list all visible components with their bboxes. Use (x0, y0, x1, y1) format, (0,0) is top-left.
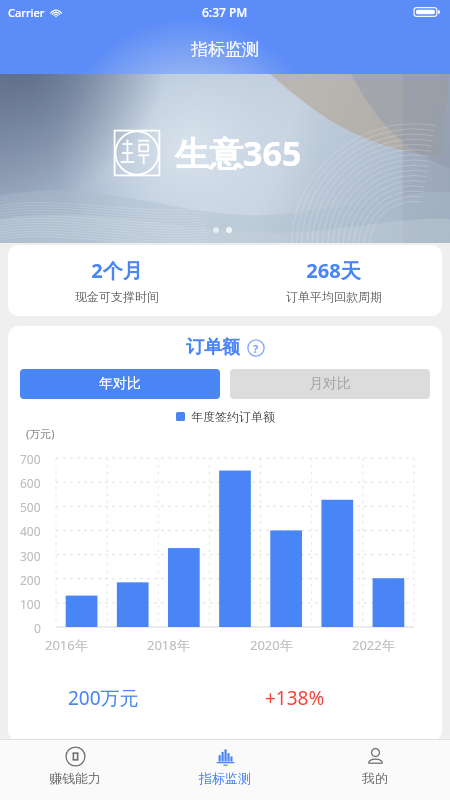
staticText: ? (253, 341, 259, 356)
staticText: 2020年 (250, 636, 293, 654)
staticText: 订单平均回款周期 (286, 289, 382, 304)
staticText: 指标监测 (199, 770, 251, 786)
staticText: 200万元 (68, 685, 225, 711)
staticText: 6:37 PM (202, 4, 248, 20)
staticText: 生意365 (175, 130, 302, 176)
staticText: 2018年 (147, 636, 190, 654)
staticText: (万元) (26, 426, 55, 441)
staticText: 订单额 (186, 336, 240, 359)
staticText: 年度签约订单额 (191, 409, 275, 424)
button[interactable]: 帮助 (247, 339, 265, 357)
staticText: 月对比 (309, 375, 351, 393)
button[interactable]: 指标监测 (150, 740, 300, 794)
staticText: 我的 (362, 770, 388, 786)
button[interactable]: 赚钱能力 (0, 740, 150, 794)
staticText: 0 (34, 620, 41, 636)
staticText: +138% (265, 685, 442, 711)
staticText: 400 (20, 523, 41, 539)
staticText: 现金可支撑时间 (75, 289, 159, 304)
button[interactable]: 268天 (225, 257, 442, 304)
button[interactable]: 月对比 (230, 369, 430, 399)
staticText: Carrier (8, 5, 45, 20)
staticText: 赚钱能力 (49, 770, 101, 786)
staticText: 2016年 (45, 636, 88, 654)
staticText: 2022年 (352, 636, 395, 654)
staticText: 300 (20, 548, 41, 564)
button[interactable]: 生意365 (0, 74, 450, 243)
button[interactable]: 年对比 (20, 369, 220, 399)
button[interactable]: 2个月 (8, 257, 225, 304)
staticText: 700 (20, 451, 41, 467)
staticText: 600 (20, 475, 41, 491)
staticText: 指标监测 (191, 39, 259, 60)
staticText: 500 (20, 499, 41, 515)
staticText: 268天 (306, 257, 361, 284)
button[interactable]: 我的 (300, 740, 450, 794)
staticText: 年对比 (99, 375, 141, 393)
staticText: 100 (20, 596, 41, 612)
staticText: 200 (20, 572, 41, 588)
staticText: 2个月 (91, 257, 143, 284)
